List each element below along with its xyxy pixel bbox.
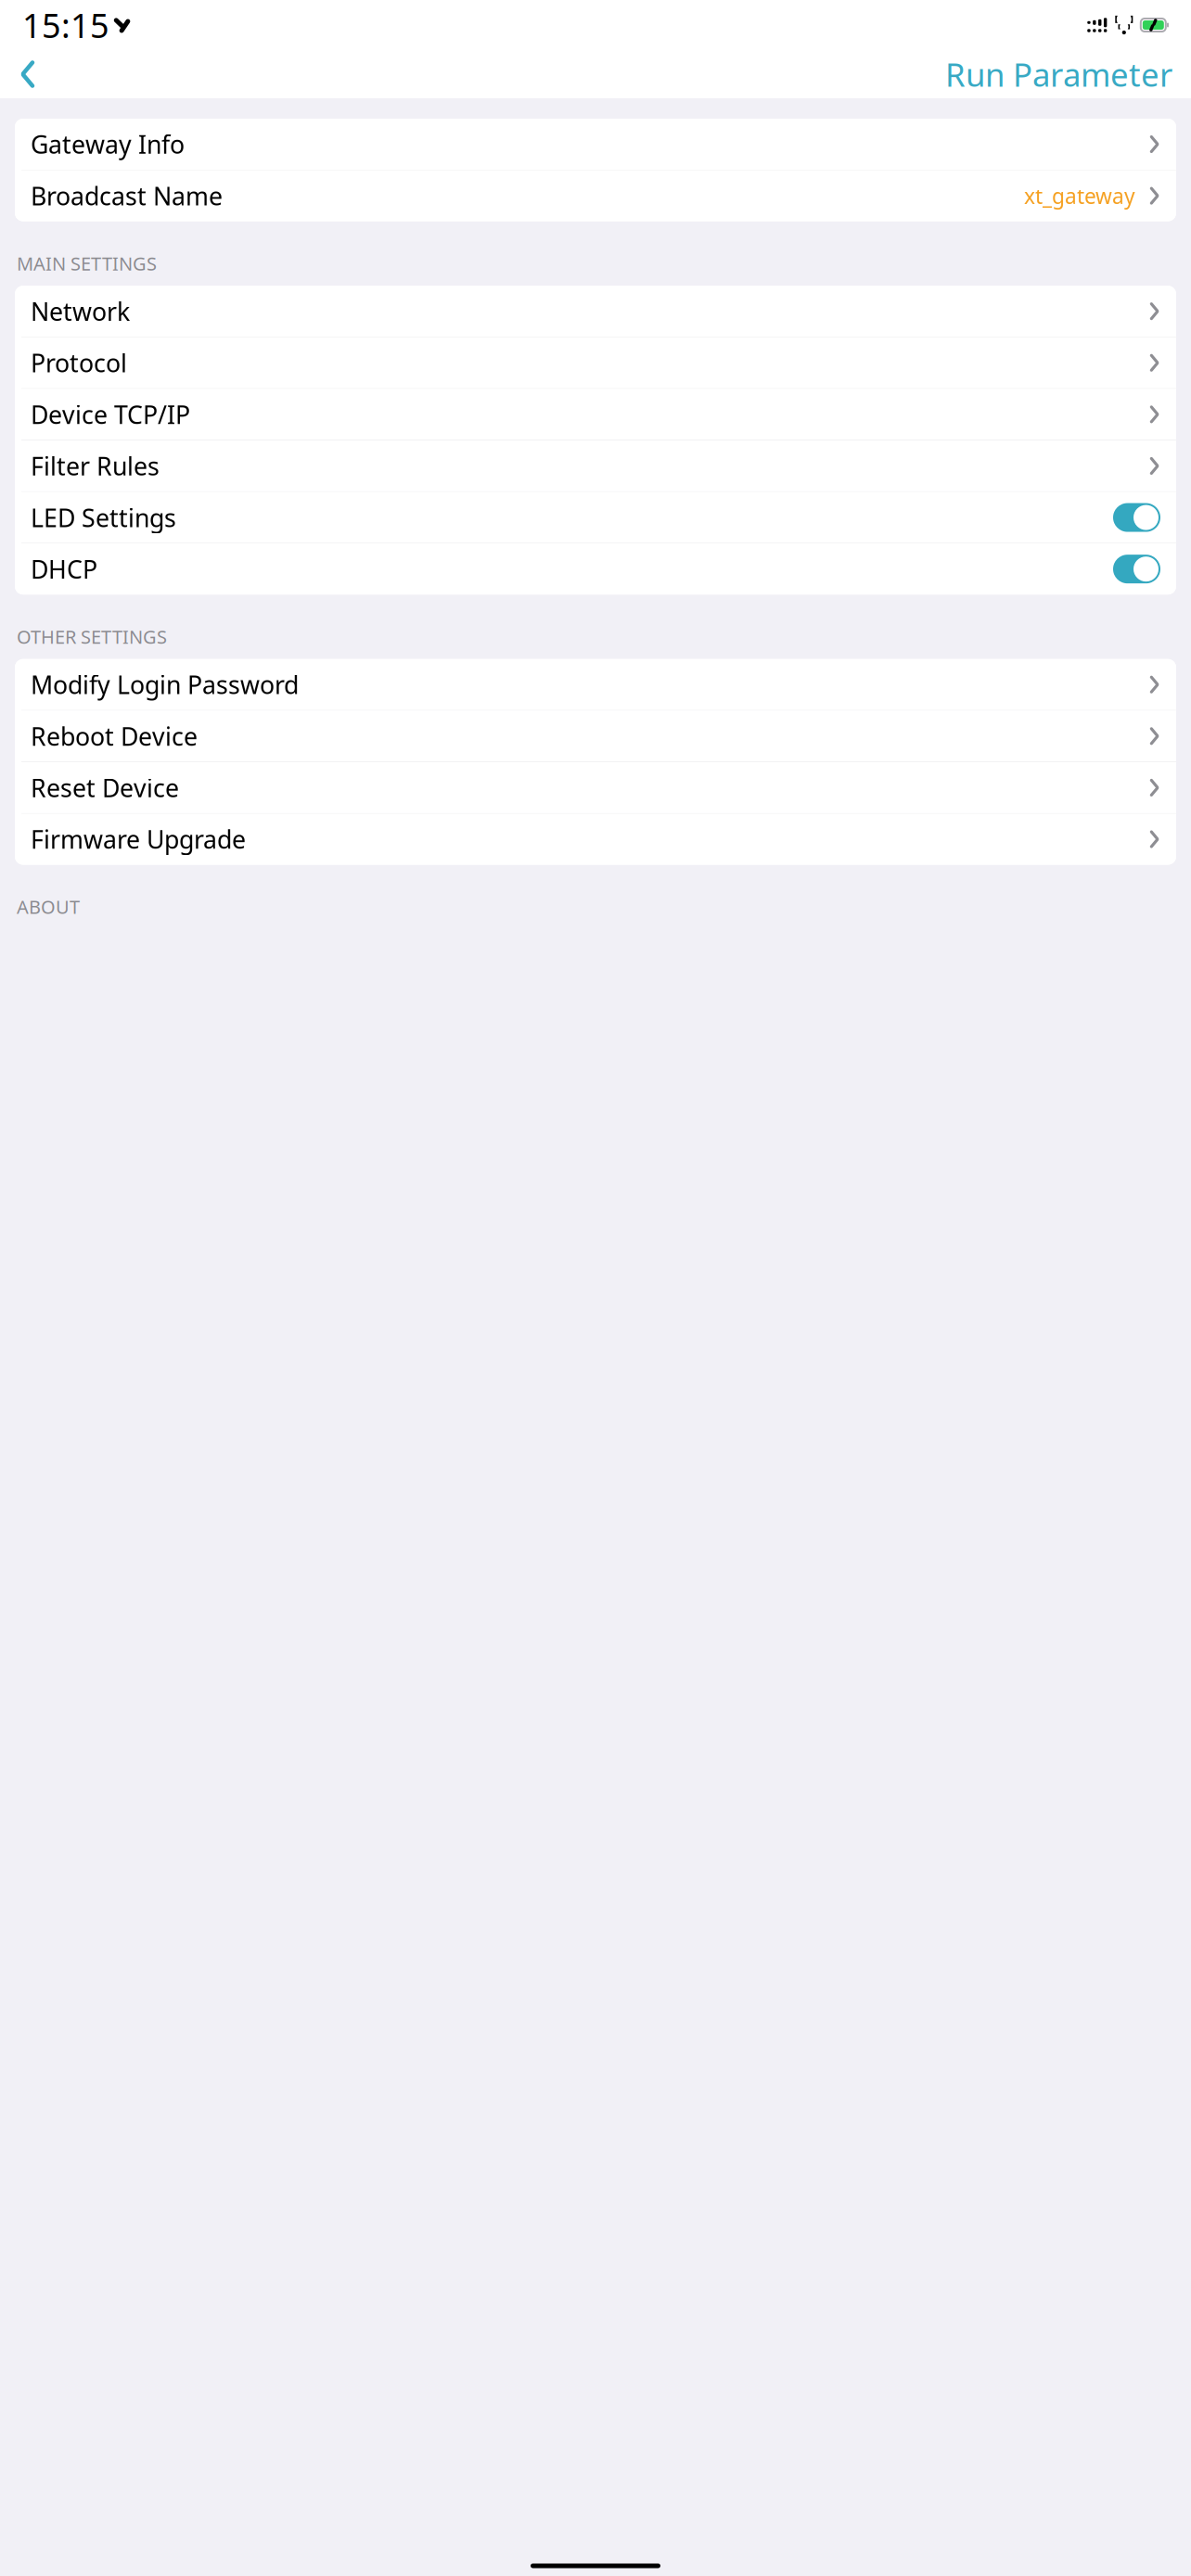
- button[interactable]: Gateway Info: [15, 119, 1176, 170]
- button[interactable]: Network: [15, 286, 1176, 337]
- staticText: Broadcast Name: [31, 179, 223, 212]
- staticText: Network: [31, 295, 130, 328]
- staticText: Device TCP/IP: [31, 398, 190, 431]
- button[interactable]: Broadcast Name: [15, 170, 1176, 221]
- staticText: Modify Login Password: [31, 668, 299, 701]
- staticText: Run Parameter: [945, 53, 1172, 96]
- staticText: Reset Device: [31, 771, 179, 804]
- staticText: 15:15: [22, 3, 109, 47]
- button[interactable]: DHCP: [15, 544, 1176, 595]
- button[interactable]: Modify Login Password: [15, 659, 1176, 710]
- staticText: DHCP: [31, 553, 97, 585]
- button[interactable]: Firmware Upgrade: [15, 814, 1176, 865]
- staticText: ABOUT: [17, 894, 80, 919]
- staticText: Reboot Device: [31, 720, 198, 752]
- staticText: Protocol: [31, 346, 127, 379]
- staticText: Firmware Upgrade: [31, 823, 246, 856]
- button[interactable]: Back: [0, 50, 52, 98]
- staticText: Gateway Info: [31, 128, 185, 161]
- staticText: Filter Rules: [31, 450, 160, 482]
- button[interactable]: LED Settings: [15, 492, 1176, 543]
- staticText: LED Settings: [31, 501, 176, 534]
- staticText: MAIN SETTINGS: [17, 251, 157, 276]
- staticText: xt_gateway: [1024, 182, 1135, 210]
- button[interactable]: Reboot Device: [15, 711, 1176, 762]
- button[interactable]: Protocol: [15, 337, 1176, 388]
- staticText: OTHER SETTINGS: [17, 624, 167, 649]
- button[interactable]: Filter Rules: [15, 440, 1176, 491]
- button[interactable]: Device TCP/IP: [15, 389, 1176, 440]
- button[interactable]: Reset Device: [15, 762, 1176, 813]
